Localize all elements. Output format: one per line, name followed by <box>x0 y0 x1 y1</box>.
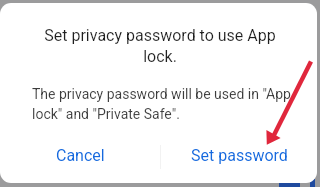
staticText: Set password <box>191 146 288 165</box>
staticText: Cancel <box>56 146 105 165</box>
staticText: Set privacy password to use App lock. <box>35 26 285 66</box>
button[interactable]: Set password <box>161 134 317 176</box>
staticText: The privacy password will be used in "Ap… <box>32 86 299 122</box>
button[interactable]: Cancel <box>0 134 160 176</box>
